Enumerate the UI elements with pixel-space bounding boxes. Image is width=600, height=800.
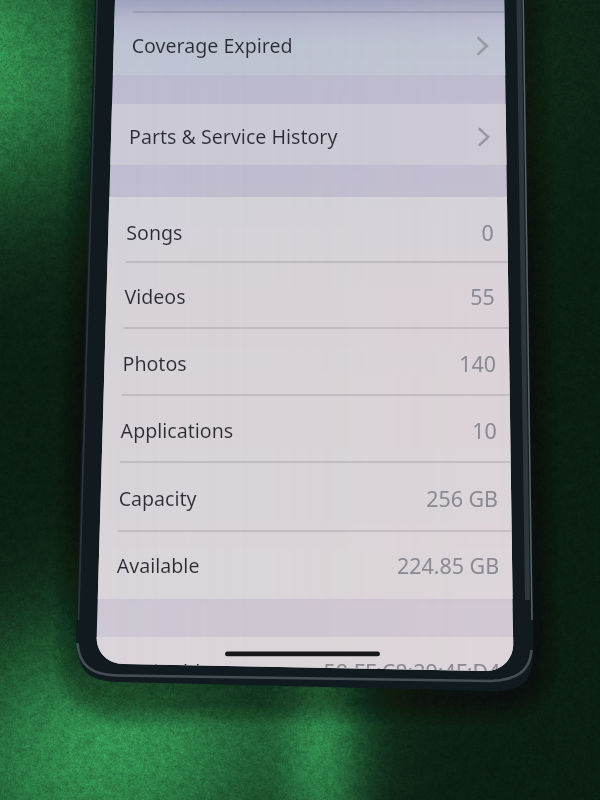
button[interactable]: iPhone storage settings photo	[0, 0, 600, 800]
